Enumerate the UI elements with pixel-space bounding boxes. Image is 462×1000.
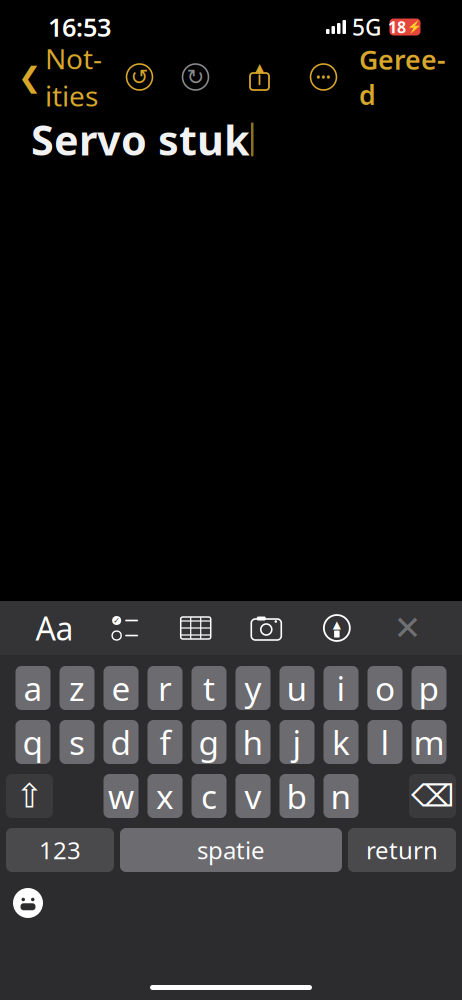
button[interactable]: Emoji (6, 881, 50, 925)
button[interactable]: More (306, 60, 340, 94)
staticText: 18 (388, 16, 406, 38)
button[interactable]: v (235, 774, 270, 818)
staticText: k (332, 720, 350, 764)
staticText: f (159, 720, 170, 764)
button[interactable]: u (279, 666, 314, 710)
staticText: n (330, 774, 351, 818)
staticText: j (292, 720, 301, 764)
staticText: g (198, 720, 219, 764)
staticText: m (413, 720, 444, 764)
staticText: ⇧ (15, 777, 43, 815)
button[interactable]: Backspace (409, 774, 456, 818)
staticText: e (111, 666, 130, 710)
button[interactable]: k (323, 720, 358, 764)
staticText: ✓ (113, 616, 120, 625)
button[interactable]: g (191, 720, 226, 764)
button[interactable]: z (59, 666, 94, 710)
button[interactable]: Undo (122, 60, 156, 94)
staticText: o (375, 666, 395, 710)
staticText: u (286, 666, 307, 710)
button[interactable]: q (15, 720, 50, 764)
staticText: l (380, 720, 389, 764)
staticText: v (244, 774, 261, 818)
button[interactable]: r (147, 666, 182, 710)
button[interactable]: n (323, 774, 358, 818)
button[interactable]: a (15, 666, 50, 710)
button[interactable]: y (235, 666, 270, 710)
button[interactable]: o (367, 666, 402, 710)
button[interactable]: h (235, 720, 270, 764)
staticText: 16:53 (48, 10, 111, 44)
button[interactable]: Redo (178, 60, 212, 94)
button[interactable]: t (191, 666, 226, 710)
staticText: z (69, 666, 85, 710)
staticText: ••• (316, 69, 331, 85)
staticText: ❮ (18, 61, 41, 93)
button[interactable]: return (348, 828, 456, 872)
button[interactable]: b (279, 774, 314, 818)
button[interactable]: spatie (120, 828, 342, 872)
button[interactable]: ❮ (8, 55, 112, 99)
button[interactable]: e (103, 666, 138, 710)
staticText: return (366, 834, 438, 866)
staticText: w (108, 774, 134, 818)
button[interactable]: Share (242, 60, 276, 94)
staticText: d (110, 720, 131, 764)
staticText: x (156, 774, 174, 818)
staticText: b (286, 774, 307, 818)
staticText: Aa (36, 607, 74, 649)
button[interactable]: i (323, 666, 358, 710)
button[interactable]: m (411, 720, 446, 764)
staticText: c (201, 774, 217, 818)
button[interactable]: x (147, 774, 182, 818)
button[interactable]: j (279, 720, 314, 764)
button[interactable]: d (103, 720, 138, 764)
staticText: t (203, 666, 215, 710)
button[interactable]: Shift (6, 774, 53, 818)
button[interactable]: 123 (6, 828, 114, 872)
button[interactable]: Text format (35, 611, 75, 645)
staticText: 123 (39, 834, 81, 866)
staticText: s (69, 720, 85, 764)
button[interactable]: Markup (317, 611, 357, 645)
staticText: Notities (45, 40, 102, 114)
button[interactable]: w (103, 774, 138, 818)
button[interactable]: p (411, 666, 446, 710)
staticText: y (244, 666, 261, 710)
staticText: ▲ (333, 618, 341, 630)
staticText: spatie (197, 834, 265, 866)
button[interactable]: f (147, 720, 182, 764)
staticText: a (23, 666, 42, 710)
staticText: 5G (352, 12, 381, 42)
staticText: r (158, 666, 172, 710)
staticText: i (336, 666, 345, 710)
staticText: q (22, 720, 43, 764)
staticText: ↻ (186, 65, 204, 89)
staticText: ⌫ (411, 779, 454, 813)
staticText: ▲ (255, 61, 264, 74)
button[interactable]: Checklist (105, 611, 145, 645)
button[interactable]: Camera (246, 611, 286, 645)
staticText: ✕ (393, 609, 421, 647)
staticText: p (418, 666, 439, 710)
staticText: Gereed (359, 42, 446, 112)
button[interactable]: Gereed (351, 55, 454, 99)
staticText: Servo stuk (31, 112, 250, 167)
staticText: ↺ (130, 65, 148, 89)
staticText: h (242, 720, 263, 764)
button[interactable]: Table (176, 611, 216, 645)
staticText: ⚡ (407, 20, 422, 34)
button[interactable]: l (367, 720, 402, 764)
button[interactable]: c (191, 774, 226, 818)
button[interactable]: s (59, 720, 94, 764)
button[interactable]: Close keyboard (387, 611, 427, 645)
